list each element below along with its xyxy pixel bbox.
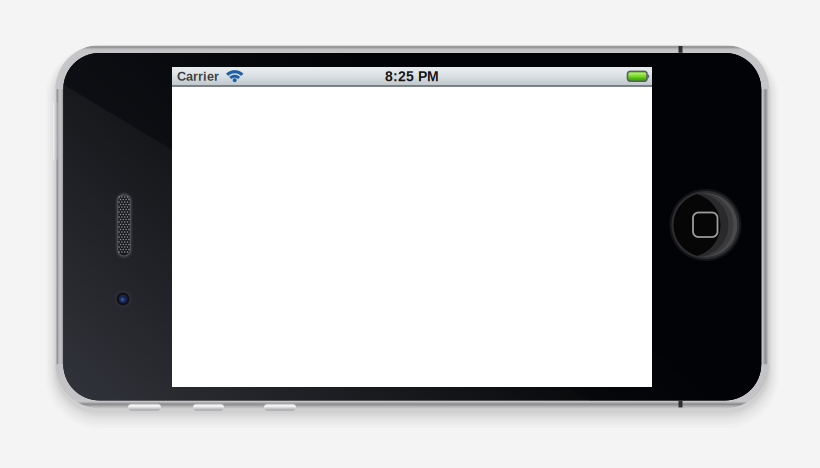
staticText: Carrier [177,69,219,83]
button[interactable]: Volume Down [264,404,296,411]
button[interactable]: Home [669,189,741,261]
button[interactable]: Sleep/Wake [53,102,58,160]
staticText: 8:25 PM [385,68,439,84]
button[interactable]: Ring/Silent [128,404,161,411]
button[interactable]: Volume Up [193,404,224,411]
